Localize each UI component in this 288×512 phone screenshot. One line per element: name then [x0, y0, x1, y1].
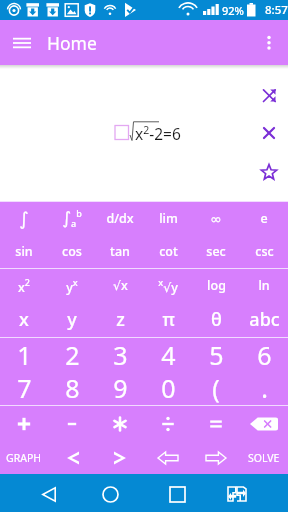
- button[interactable]: Favorite: [250, 153, 288, 191]
- staticText: 9: [113, 371, 128, 405]
- staticText: lim: [159, 210, 178, 227]
- button[interactable]: x2: [0, 269, 48, 302]
- button[interactable]: 1: [0, 338, 48, 370]
- button[interactable]: Equals: [192, 406, 240, 441]
- staticText: SOLVE: [248, 451, 280, 465]
- button[interactable]: More options: [250, 24, 288, 62]
- staticText: cot: [159, 243, 178, 260]
- button[interactable]: Greater than: [96, 441, 144, 474]
- staticText: ∫ab: [62, 207, 82, 230]
- button[interactable]: Clear: [250, 114, 288, 152]
- button[interactable]: log: [192, 269, 240, 302]
- button[interactable]: e: [240, 202, 288, 235]
- button[interactable]: Shuffle: [250, 76, 288, 114]
- staticText: 6: [257, 338, 272, 370]
- staticText: x2: [18, 276, 30, 295]
- button[interactable]: cos: [48, 235, 96, 268]
- button[interactable]: 5: [192, 338, 240, 370]
- button[interactable]: csc: [240, 235, 288, 268]
- button[interactable]: (: [192, 370, 240, 405]
- staticText: 92%: [222, 3, 244, 18]
- button[interactable]: SOLVE: [240, 441, 288, 474]
- button[interactable]: y: [48, 302, 96, 337]
- button[interactable]: cot: [144, 235, 192, 268]
- button[interactable]: Plus: [0, 406, 48, 441]
- button[interactable]: yx: [48, 269, 96, 302]
- button[interactable]: tan: [96, 235, 144, 268]
- staticText: yx: [66, 276, 78, 295]
- staticText: ln: [258, 277, 270, 294]
- button[interactable]: Screenshot: [218, 475, 256, 512]
- staticText: x: [19, 307, 29, 332]
- staticText: 8:57: [265, 2, 288, 18]
- staticText: ∞: [210, 211, 222, 227]
- button[interactable]: ∫ab: [48, 202, 96, 235]
- button[interactable]: 3: [96, 338, 144, 370]
- staticText: tan: [110, 243, 130, 260]
- button[interactable]: Move right: [192, 441, 240, 474]
- staticText: d/dx: [106, 210, 134, 227]
- button[interactable]: √x: [96, 269, 144, 302]
- staticText: 4: [161, 338, 176, 370]
- button[interactable]: .: [240, 370, 288, 405]
- staticText: (: [212, 371, 220, 405]
- button[interactable]: 4: [144, 338, 192, 370]
- staticText: 2: [65, 338, 80, 370]
- button[interactable]: 8: [48, 370, 96, 405]
- button[interactable]: Backspace: [240, 406, 288, 441]
- staticText: 1: [17, 338, 32, 370]
- button[interactable]: ln: [240, 269, 288, 302]
- staticText: abc: [249, 307, 280, 332]
- button[interactable]: z: [96, 302, 144, 337]
- staticText: x√y: [158, 276, 178, 295]
- button[interactable]: 0: [144, 370, 192, 405]
- button[interactable]: 6: [240, 338, 288, 370]
- button[interactable]: d/dx: [96, 202, 144, 235]
- staticText: Home: [47, 31, 97, 55]
- staticText: 3: [113, 338, 128, 370]
- staticText: GRAPH: [6, 451, 42, 465]
- staticText: sin: [15, 243, 33, 260]
- button[interactable]: 7: [0, 370, 48, 405]
- staticText: 7: [17, 371, 32, 405]
- button[interactable]: Less than: [48, 441, 96, 474]
- staticText: sec: [206, 243, 226, 260]
- staticText: 8: [65, 371, 80, 405]
- staticText: e: [260, 210, 268, 227]
- button[interactable]: Back: [30, 475, 68, 512]
- button[interactable]: ∞: [192, 202, 240, 235]
- button[interactable]: lim: [144, 202, 192, 235]
- button[interactable]: π: [144, 302, 192, 337]
- staticText: √x: [113, 277, 128, 294]
- button[interactable]: Multiply: [96, 406, 144, 441]
- staticText: π: [162, 307, 175, 332]
- staticText: y: [67, 307, 77, 332]
- staticText: 0: [161, 371, 176, 405]
- button[interactable]: sec: [192, 235, 240, 268]
- button[interactable]: Move left: [144, 441, 192, 474]
- button[interactable]: x: [0, 302, 48, 337]
- staticText: csc: [255, 243, 274, 260]
- button[interactable]: Recents: [158, 475, 196, 512]
- button[interactable]: Home: [91, 475, 129, 512]
- button[interactable]: sin: [0, 235, 48, 268]
- button[interactable]: abc: [240, 302, 288, 337]
- staticText: ∫: [19, 208, 29, 229]
- button[interactable]: Minus: [48, 406, 96, 441]
- button[interactable]: Divide: [144, 406, 192, 441]
- staticText: θ: [211, 307, 222, 332]
- button[interactable]: GRAPH: [0, 441, 48, 474]
- staticText: z: [116, 307, 125, 332]
- button[interactable]: Menu: [0, 21, 44, 65]
- button[interactable]: x√y: [144, 269, 192, 302]
- button[interactable]: 2: [48, 338, 96, 370]
- staticText: .: [261, 371, 268, 405]
- staticText: 5: [209, 338, 224, 370]
- staticText: log: [207, 277, 226, 294]
- staticText: x2-2=6: [135, 123, 181, 145]
- button[interactable]: ∫: [0, 202, 48, 235]
- button[interactable]: θ: [192, 302, 240, 337]
- staticText: cos: [62, 243, 82, 260]
- button[interactable]: 9: [96, 370, 144, 405]
